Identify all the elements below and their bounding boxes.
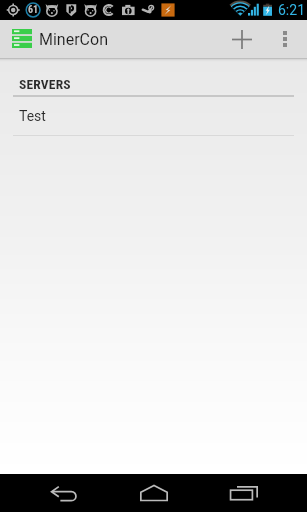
- button[interactable]: More options: [262, 20, 307, 58]
- button[interactable]: Test: [0, 97, 307, 135]
- staticText: Test: [19, 108, 46, 124]
- button[interactable]: Add server: [221, 20, 262, 58]
- staticText: 6:21: [278, 2, 305, 18]
- staticText: 61: [28, 4, 39, 16]
- staticText: SERVERS: [19, 76, 71, 92]
- button[interactable]: Back: [41, 474, 87, 512]
- button[interactable]: Home: [131, 474, 177, 512]
- staticText: MinerCon: [39, 30, 108, 49]
- button[interactable]: Recent apps: [221, 474, 267, 512]
